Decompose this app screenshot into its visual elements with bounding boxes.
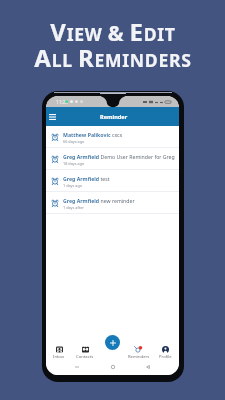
staticText: Profile [159,354,172,360]
staticText: Reminder [100,113,128,121]
staticText: Matthew Palikovic cxcx [63,131,123,138]
staticText: Inbox [53,354,65,360]
button[interactable]: Alarm [46,148,179,170]
staticText: 1 days after [63,205,84,210]
staticText: 1 days ago [63,183,83,188]
other: Alarm [51,199,59,207]
button[interactable]: Menu [46,107,59,126]
other: Alarm [51,177,59,185]
button[interactable]: Alarm [46,126,179,148]
button[interactable]: Alarm [46,170,179,192]
staticText: Greg Armfield Demo User Reminder for Gre… [63,153,175,160]
button[interactable]: Recents [143,362,153,372]
other: Alarm [51,133,59,141]
staticText: Contacts [76,354,94,360]
button[interactable]: Home [108,362,118,372]
staticText: 66 days ago [63,139,85,144]
staticText: VIEW & EDIT ALL REMINDERS [34,15,192,74]
staticText: 11:22 [56,99,68,105]
button[interactable]: Contacts [72,344,98,361]
button[interactable]: Reminders [125,344,152,361]
button[interactable]: Alarm [46,192,179,214]
staticText: Reminders [128,354,150,360]
other: Alarm [51,155,59,163]
button[interactable]: Add reminder [105,335,120,350]
staticText: Greg Armfield new reminder [63,197,135,204]
staticText: 18 days ago [63,161,85,166]
button[interactable]: Inbox [46,344,72,361]
button[interactable]: Profile [152,344,179,361]
staticText: Greg Armfield test [63,175,110,182]
button[interactable]: Back [72,362,82,372]
